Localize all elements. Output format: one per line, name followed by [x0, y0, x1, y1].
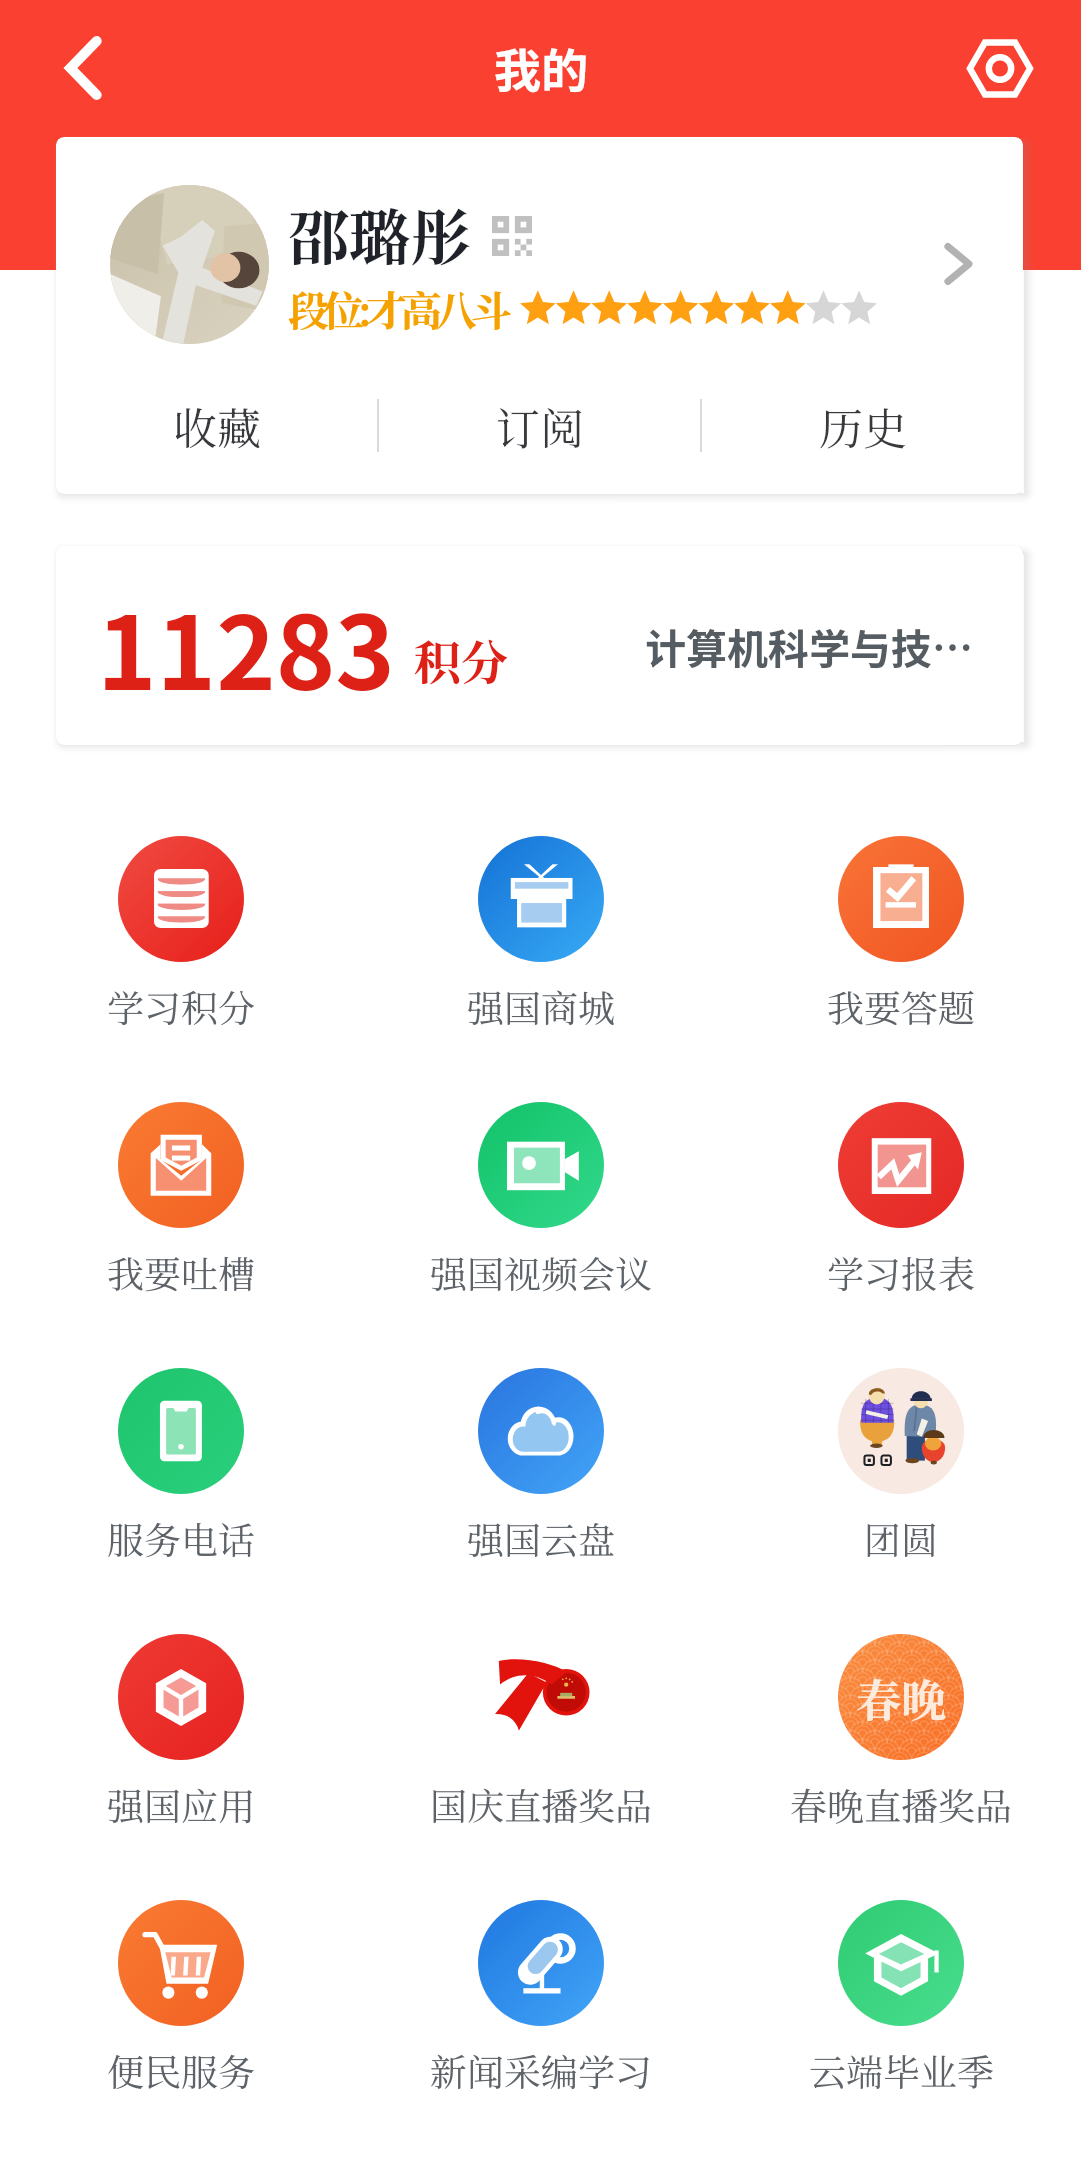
button[interactable]: Back [38, 23, 128, 113]
button[interactable]: 强国云盘 [361, 1368, 721, 1634]
staticText: 便民服务 [107, 2043, 255, 2096]
staticText: 历史 [819, 394, 907, 457]
staticText: 强国视频会议 [430, 1245, 652, 1298]
staticText: 订阅 [496, 394, 584, 457]
staticText: 积分 [414, 626, 508, 694]
button[interactable]: 强国商城 [361, 836, 721, 1102]
staticText: 11283 [97, 573, 395, 719]
staticText: 强国云盘 [467, 1511, 615, 1564]
button[interactable]: 订阅 [379, 356, 700, 494]
staticText: 云端毕业季 [809, 2043, 994, 2096]
staticText: 学习报表 [827, 1245, 975, 1298]
button[interactable]: 新闻采编学习 [361, 1900, 721, 2158]
button[interactable]: 我要答题 [721, 836, 1081, 1102]
button[interactable]: 云端毕业季 [721, 1900, 1081, 2158]
button[interactable]: 11283 [56, 546, 1023, 745]
staticText: 春晚直播奖品 [790, 1777, 1012, 1830]
staticText: 计算机科学与技… [645, 616, 973, 675]
staticText: 国庆直播奖品 [430, 1777, 652, 1830]
staticText: 服务电话 [107, 1511, 255, 1564]
button[interactable]: 我要吐槽 [0, 1102, 361, 1368]
button[interactable]: 服务电话 [0, 1368, 361, 1634]
button[interactable]: 便民服务 [0, 1900, 361, 2158]
button[interactable]: 团圆 [721, 1368, 1081, 1634]
staticText: 新闻采编学习 [430, 2043, 652, 2096]
staticText: 学习积分 [107, 979, 255, 1032]
staticText: 我的 [494, 33, 588, 101]
button[interactable]: Settings [955, 23, 1045, 113]
button[interactable]: 邵璐彤 [56, 137, 1023, 391]
button[interactable]: 国庆直播奖品 [361, 1634, 721, 1900]
button[interactable]: 强国视频会议 [361, 1102, 721, 1368]
staticText: 我要吐槽 [107, 1245, 255, 1298]
staticText: 团圆 [864, 1511, 938, 1564]
staticText: 收藏 [173, 394, 261, 457]
button[interactable]: 收藏 [56, 356, 377, 494]
staticText: 段位:才高八斗 [288, 279, 506, 338]
staticText: 强国商城 [467, 979, 615, 1032]
button[interactable]: 强国应用 [0, 1634, 361, 1900]
staticText: 强国应用 [107, 1777, 255, 1830]
staticText: 我要答题 [827, 979, 975, 1032]
button[interactable]: 学习报表 [721, 1102, 1081, 1368]
staticText: 邵璐彤 [288, 190, 472, 278]
staticText: 春晚 [856, 1665, 947, 1730]
button[interactable]: 春晚 [721, 1634, 1081, 1900]
button[interactable]: 历史 [702, 356, 1023, 494]
button[interactable]: 学习积分 [0, 836, 361, 1102]
